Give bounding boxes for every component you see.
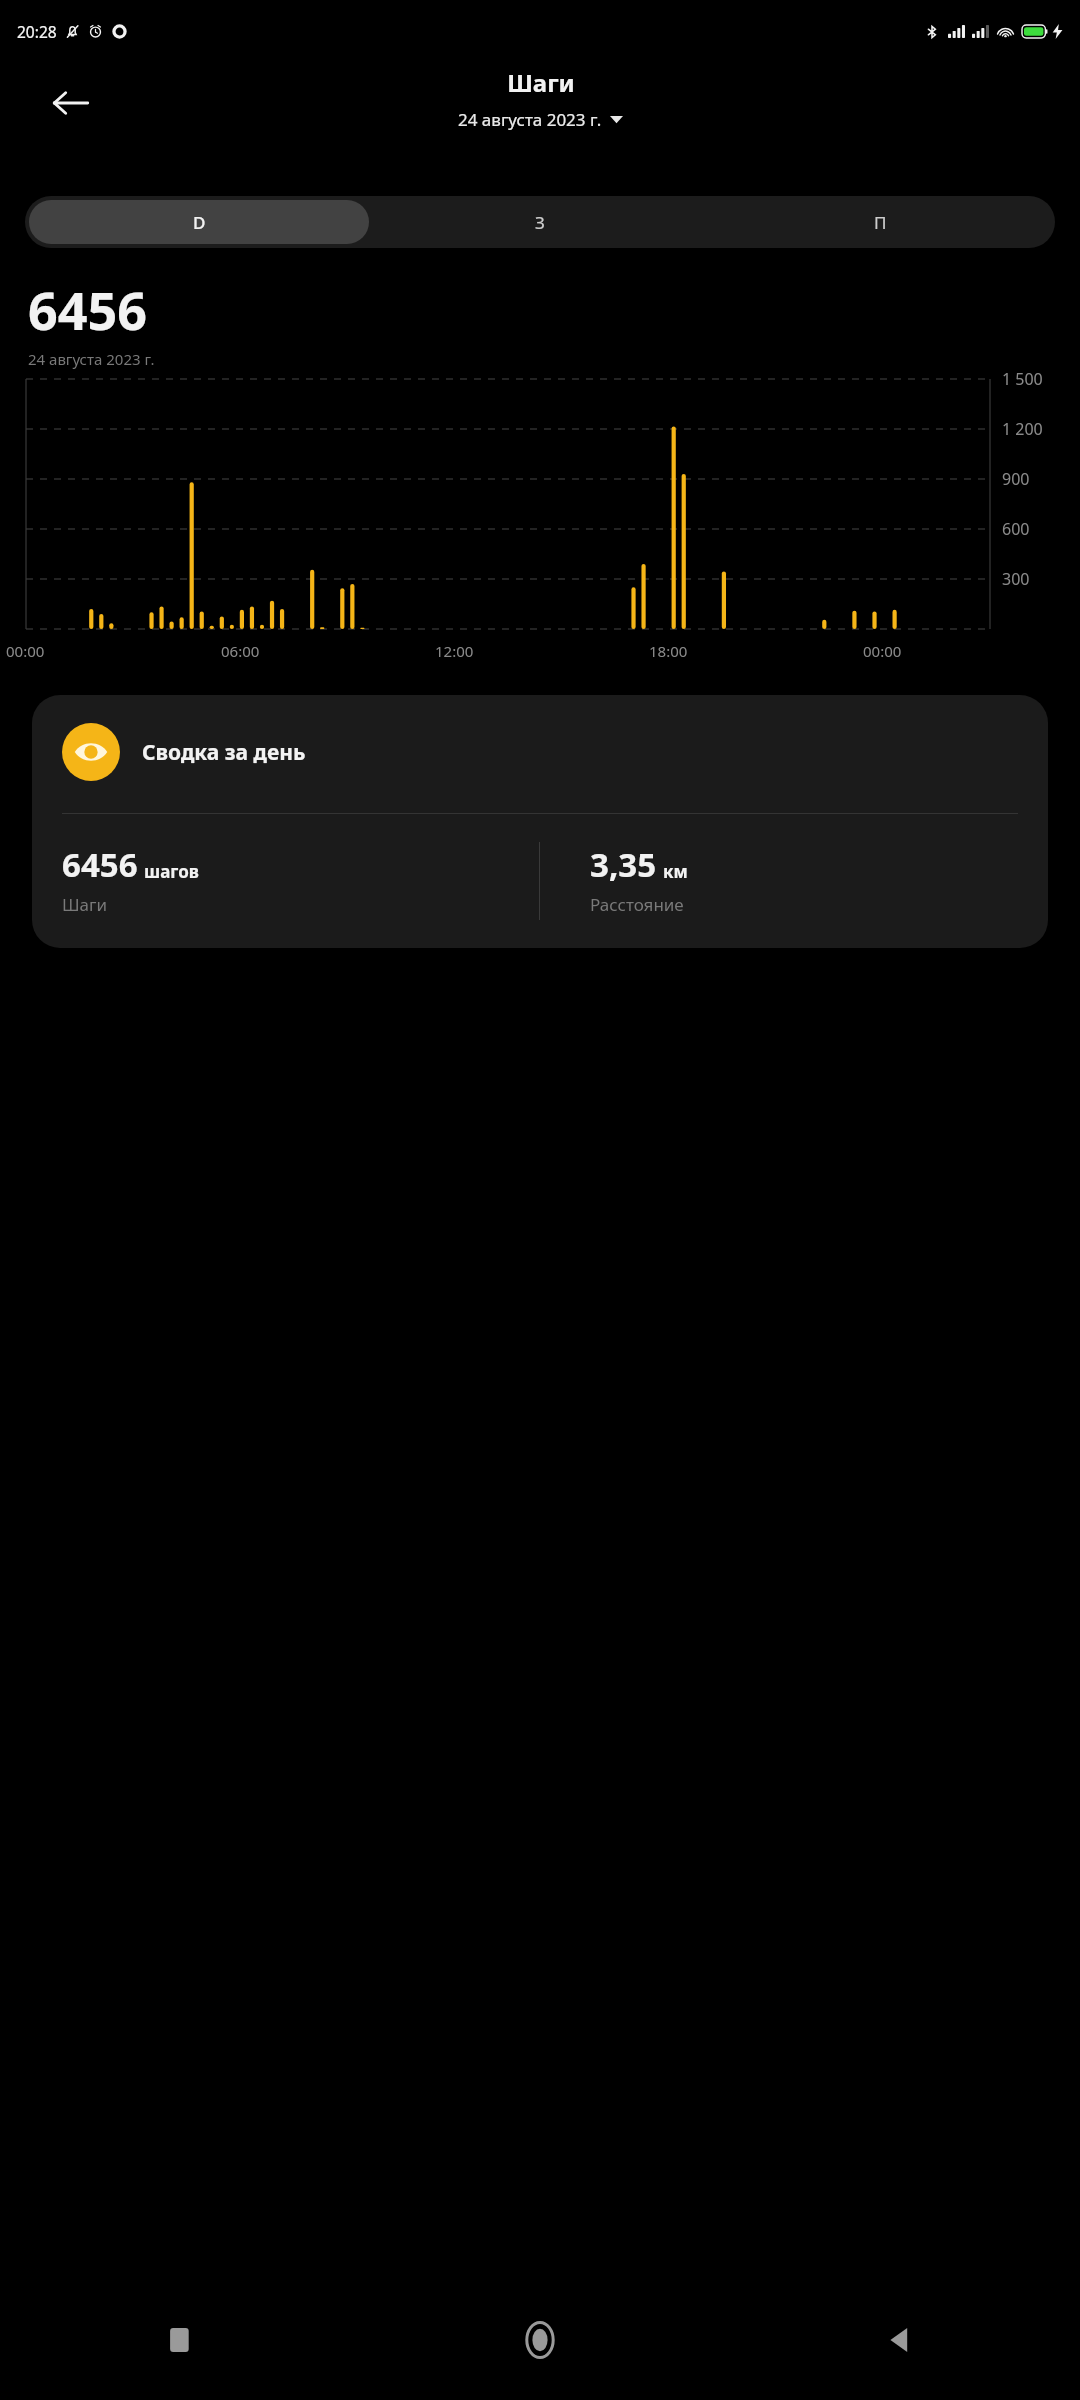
button[interactable]: Recents — [0, 2280, 360, 2400]
button[interactable]: П — [710, 200, 1051, 244]
staticText: 18:00 — [649, 641, 688, 661]
staticText: 1 200 — [1002, 418, 1043, 440]
button[interactable]: Back — [40, 72, 102, 134]
staticText: 00:00 — [863, 641, 902, 661]
staticText: км — [663, 860, 688, 883]
staticText: П — [874, 211, 887, 234]
staticText: Шаги — [507, 66, 575, 99]
button[interactable]: Сводка за день — [32, 695, 1048, 948]
button[interactable]: З — [369, 200, 710, 244]
staticText: Сводка за день — [142, 738, 306, 767]
staticText: Шаги — [62, 893, 108, 916]
staticText: 600 — [1002, 518, 1030, 540]
staticText: 6456 — [62, 842, 138, 887]
staticText: 20:28 — [17, 21, 57, 42]
staticText: 1 500 — [1002, 368, 1043, 390]
button[interactable]: 24 августа 2023 г. — [452, 105, 629, 134]
staticText: 3,35 — [590, 842, 657, 887]
staticText: 06:00 — [221, 641, 260, 661]
staticText: шагов — [144, 860, 199, 883]
staticText: 24 августа 2023 г. — [28, 349, 155, 369]
staticText: З — [535, 211, 545, 234]
staticText: 24 августа 2023 г. — [458, 108, 602, 131]
staticText: 12:00 — [435, 641, 474, 661]
button[interactable]: Back — [720, 2280, 1080, 2400]
staticText: 300 — [1002, 568, 1030, 590]
staticText: Расстояние — [590, 893, 684, 916]
staticText: 900 — [1002, 468, 1030, 490]
staticText: D — [193, 211, 206, 234]
staticText: 00:00 — [6, 641, 45, 661]
button[interactable]: Home — [360, 2280, 720, 2400]
staticText: 6456 — [28, 274, 147, 345]
button[interactable]: D — [29, 200, 369, 244]
